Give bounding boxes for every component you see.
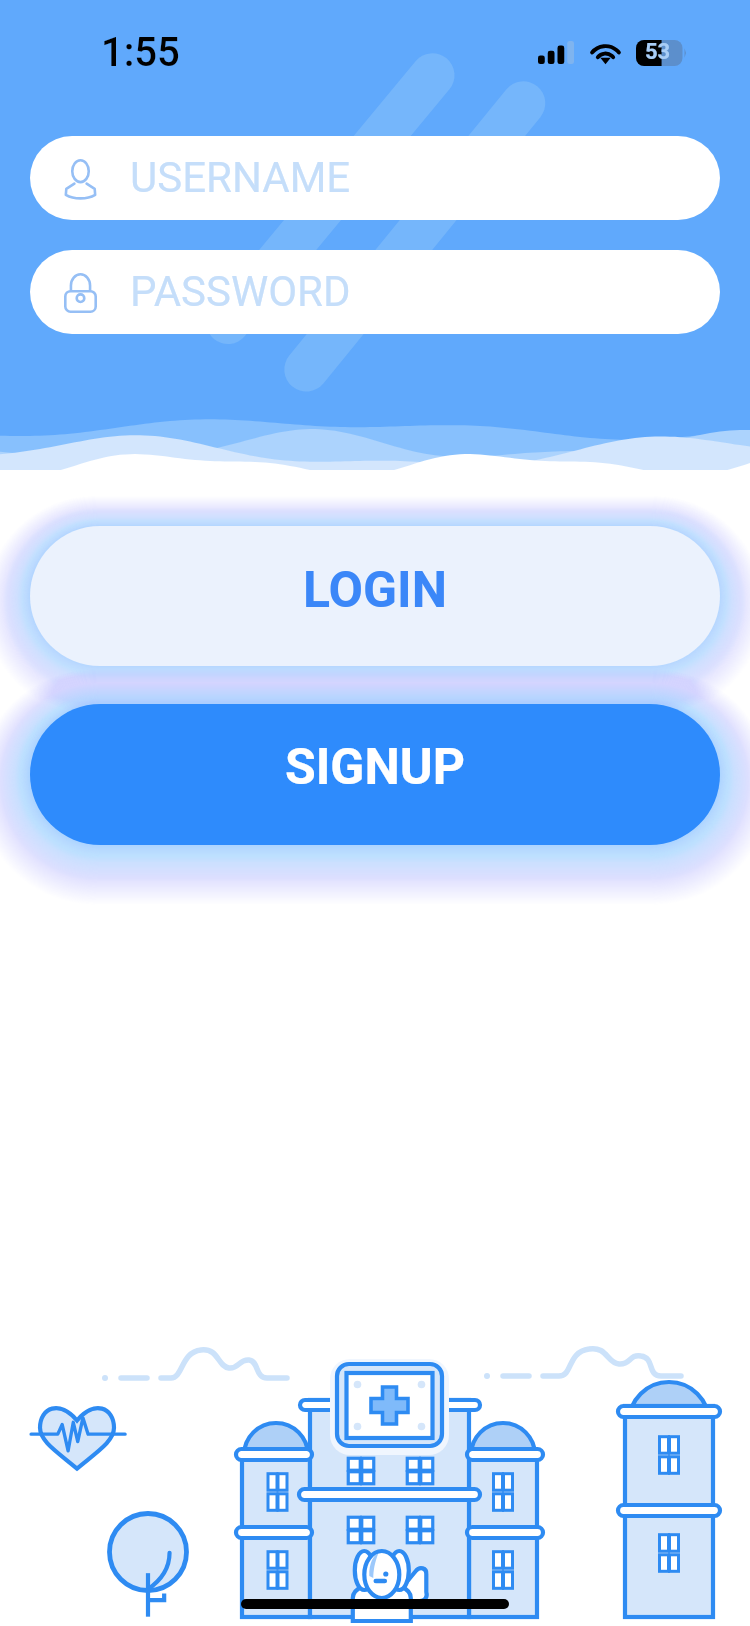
button[interactable]: LOGIN bbox=[30, 526, 720, 666]
staticText: SIGNUP bbox=[285, 738, 465, 797]
staticText: 53 bbox=[645, 39, 671, 65]
button[interactable]: SIGNUP bbox=[30, 704, 720, 845]
staticText: LOGIN bbox=[303, 561, 448, 620]
button[interactable]: USERNAME bbox=[30, 136, 720, 220]
staticText: 1:55 bbox=[101, 29, 180, 75]
staticText: PASSWORD bbox=[130, 267, 351, 316]
staticText: USERNAME bbox=[130, 153, 351, 202]
button[interactable]: PASSWORD bbox=[30, 250, 720, 334]
